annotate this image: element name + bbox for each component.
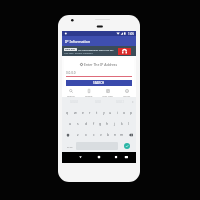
other: Ad (118, 48, 131, 55)
staticText: Low fees. Instant transfers. (64, 52, 94, 55)
staticText: f (93, 121, 95, 126)
button[interactable]: e (79, 107, 86, 118)
other: More suggestions (132, 101, 134, 103)
staticText: q (66, 110, 69, 115)
button[interactable]: i (114, 107, 121, 118)
button[interactable]: New app (62, 46, 136, 56)
staticText: ?123 (67, 145, 73, 148)
staticText: Enter The IP Address (84, 62, 118, 67)
staticText: Search (67, 94, 75, 97)
button[interactable]: x (82, 130, 89, 139)
button[interactable]: About (117, 87, 136, 97)
staticText: 1:06 (128, 32, 134, 36)
staticText: o (123, 110, 126, 115)
staticText: h (106, 121, 109, 126)
button[interactable]: w (71, 107, 79, 118)
button[interactable]: m (119, 130, 125, 139)
button[interactable]: p (128, 107, 135, 118)
staticText: l (128, 121, 129, 126)
staticText: b (107, 132, 110, 137)
button[interactable]: Speed (80, 87, 98, 97)
staticText: SEARCH (93, 81, 105, 85)
staticText: d (85, 121, 88, 126)
staticText: p (130, 110, 133, 115)
staticText: g (99, 121, 102, 126)
button[interactable]: u (107, 107, 114, 118)
staticText: e (82, 110, 84, 115)
button[interactable]: q (63, 107, 71, 118)
button[interactable]: Your Info (98, 87, 117, 97)
button[interactable]: s (74, 118, 82, 129)
button[interactable]: f (90, 118, 97, 129)
staticText: About (123, 94, 131, 97)
button[interactable]: Enter (118, 141, 135, 151)
staticText: t (96, 110, 98, 115)
staticText: x (85, 132, 87, 137)
button[interactable]: Shift (63, 130, 73, 139)
staticText: 0.0.0 (95, 100, 101, 104)
button[interactable]: g (97, 118, 104, 129)
staticText: r (89, 110, 91, 115)
staticText: New app (65, 48, 76, 51)
button[interactable]: c (90, 130, 97, 139)
button[interactable]: IP Information (62, 36, 136, 46)
staticText: 0.0.0.1 (116, 100, 125, 104)
staticText: n (114, 132, 117, 137)
staticText: 0.0.0.0 (70, 100, 79, 104)
button[interactable]: r (86, 107, 93, 118)
button[interactable]: j (111, 118, 118, 129)
staticText: Try the Budgeting app in 60 sec (78, 48, 114, 51)
button[interactable]: o (121, 107, 128, 118)
button[interactable]: d (82, 118, 90, 129)
staticText: v (100, 132, 102, 137)
button[interactable]: t (93, 107, 100, 118)
staticText: Your Info (102, 94, 113, 97)
staticText: z (77, 132, 79, 137)
staticText: y (103, 110, 105, 115)
button[interactable]: a (66, 118, 74, 129)
button[interactable]: SEARCH (66, 80, 132, 86)
button[interactable]: k (118, 118, 125, 129)
staticText: Speed (85, 94, 93, 97)
button[interactable]: h (104, 118, 111, 129)
staticText: 0.0.0.0 (66, 71, 76, 75)
button[interactable]: Backspace (126, 130, 135, 139)
staticText: m (120, 132, 124, 137)
staticText: k (121, 121, 123, 126)
button[interactable]: v (98, 130, 104, 139)
staticText: c (93, 132, 95, 137)
staticText: s (77, 121, 79, 126)
staticText: j (114, 121, 115, 126)
staticText: IP Information (65, 39, 91, 44)
staticText: u (109, 110, 112, 115)
button[interactable]: Search (62, 87, 80, 97)
button[interactable]: l (125, 118, 132, 129)
staticText: w (74, 110, 77, 115)
button[interactable]: y (100, 107, 107, 118)
button[interactable]: b (105, 130, 111, 139)
button[interactable]: ?123 (63, 141, 76, 151)
button[interactable]: n (112, 130, 118, 139)
button[interactable]: z (74, 130, 81, 139)
staticText: i (117, 110, 118, 115)
staticText: a (69, 121, 71, 126)
